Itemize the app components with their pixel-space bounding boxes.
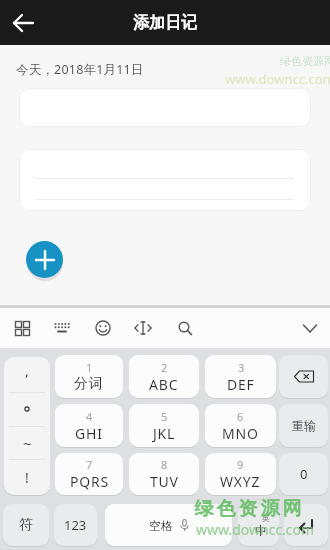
button[interactable]: 空格 <box>105 504 232 546</box>
button[interactable]: 4 <box>55 404 123 447</box>
button[interactable] <box>129 314 157 342</box>
staticText: PQRS <box>70 472 109 491</box>
staticText: , <box>25 361 29 380</box>
staticText: 符 <box>19 516 33 534</box>
button[interactable]: 6 <box>205 404 276 447</box>
button[interactable]: 2 <box>129 355 199 398</box>
staticText: 3 <box>238 360 245 375</box>
staticText: 9 <box>237 457 244 472</box>
staticText: 2 <box>161 360 168 375</box>
button[interactable]: 9 <box>205 453 276 495</box>
button[interactable] <box>19 88 311 127</box>
staticText: 1 <box>86 360 93 375</box>
staticText: 重输 <box>292 418 316 433</box>
staticText: 0 <box>300 465 308 483</box>
button[interactable]: , <box>4 357 50 495</box>
staticText: 添加日记 <box>133 13 197 33</box>
button[interactable]: 7 <box>55 453 123 495</box>
staticText: www.downcc.com <box>225 70 330 88</box>
staticText: 分词 <box>74 375 104 393</box>
button[interactable]: 3 <box>205 355 276 398</box>
button[interactable]: 符 <box>3 504 49 546</box>
button[interactable]: 1 <box>55 355 123 398</box>
staticText: 英 <box>262 513 270 523</box>
button[interactable] <box>8 314 36 342</box>
button[interactable] <box>171 314 199 342</box>
button[interactable]: 0 <box>279 453 328 495</box>
staticText: DEF <box>227 375 255 394</box>
staticText: MNO <box>222 424 259 443</box>
staticText: 空格 <box>149 518 173 533</box>
staticText: 6 <box>237 409 244 424</box>
staticText: 4 <box>86 409 93 424</box>
button[interactable] <box>26 241 63 278</box>
button[interactable] <box>48 314 76 342</box>
button[interactable]: 英 <box>238 504 279 546</box>
staticText: ! <box>25 468 29 487</box>
staticText: 绿色资源网 <box>193 497 303 521</box>
button[interactable] <box>284 504 328 546</box>
button[interactable]: 8 <box>129 453 199 495</box>
button[interactable]: 5 <box>129 404 199 447</box>
button[interactable]: 重输 <box>279 404 328 447</box>
staticText: www.downcc.com <box>196 520 315 539</box>
button[interactable] <box>19 149 311 211</box>
staticText: 8 <box>161 457 168 472</box>
button[interactable] <box>89 314 117 342</box>
button[interactable] <box>296 314 324 342</box>
staticText: 123 <box>64 516 87 534</box>
button[interactable]: 123 <box>54 504 97 546</box>
staticText: ABC <box>149 375 179 394</box>
staticText: 7 <box>86 457 93 472</box>
staticText: 今天，2018年1月11日 <box>16 61 144 78</box>
staticText: ~ <box>23 433 32 453</box>
staticText: 绿色资源网 <box>280 54 330 68</box>
staticText: 中 <box>255 523 267 538</box>
staticText: GHI <box>75 424 103 443</box>
staticText: WXYZ <box>220 472 261 491</box>
button[interactable] <box>279 355 328 398</box>
staticText: TUV <box>150 472 179 491</box>
button[interactable] <box>4 4 42 42</box>
staticText: 5 <box>161 409 168 424</box>
staticText: JKL <box>153 424 176 443</box>
